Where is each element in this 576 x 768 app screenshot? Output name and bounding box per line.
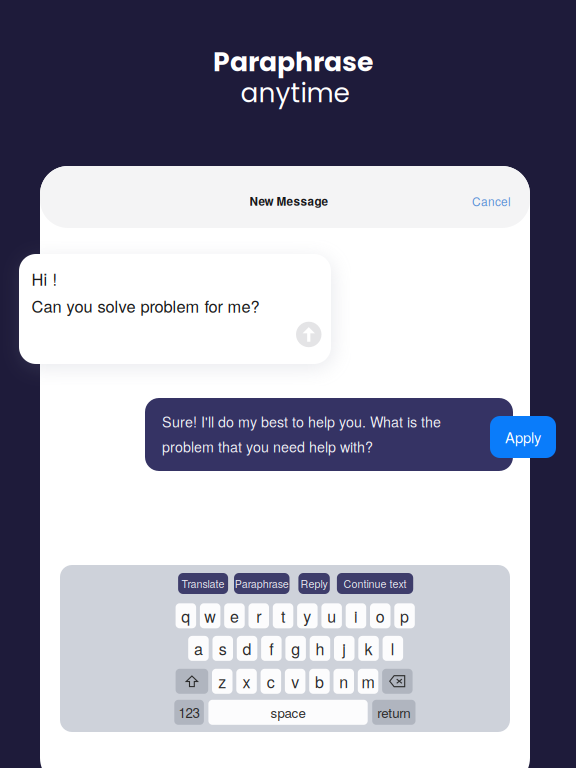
staticText: Reply [301, 576, 328, 591]
button[interactable]: return [372, 700, 415, 725]
staticText: return [377, 703, 410, 722]
staticText: y [303, 604, 311, 627]
button[interactable]: s [212, 636, 233, 661]
button[interactable]: d [237, 636, 257, 661]
staticText: m [362, 670, 375, 693]
staticText: Translate [182, 576, 225, 591]
staticText: u [327, 604, 336, 627]
staticText: Hi ! [31, 267, 57, 290]
button[interactable]: q [176, 603, 196, 628]
button[interactable]: p [394, 603, 415, 628]
staticText: Cancel [472, 192, 511, 209]
button[interactable]: Cancel [451, 192, 511, 210]
staticText: q [181, 604, 190, 627]
button[interactable]: e [224, 603, 245, 628]
staticText: anytime [240, 74, 349, 111]
button[interactable]: Paraphrase [234, 573, 289, 594]
button[interactable]: w [200, 603, 220, 628]
button[interactable]: j [334, 636, 354, 661]
button[interactable]: i [346, 603, 366, 628]
staticText: f [269, 637, 273, 660]
button[interactable]: r [248, 603, 269, 628]
button[interactable]: k [358, 636, 379, 661]
button[interactable]: Delete [382, 669, 413, 694]
staticText: s [219, 637, 227, 660]
staticText: j [342, 637, 346, 660]
staticText: space [271, 703, 306, 722]
button[interactable]: o [370, 603, 390, 628]
staticText: New Message [249, 193, 328, 209]
button[interactable]: t [273, 603, 293, 628]
button[interactable]: Shift [176, 669, 208, 694]
staticText: a [194, 637, 203, 660]
staticText: g [291, 637, 300, 660]
staticText: c [267, 670, 275, 693]
button[interactable]: Continue text [337, 573, 413, 594]
staticText: e [230, 604, 239, 627]
staticText: l [391, 637, 395, 660]
staticText: i [354, 604, 358, 627]
button[interactable]: m [358, 669, 378, 694]
button[interactable]: v [285, 669, 305, 694]
staticText: Paraphrase [213, 43, 373, 81]
staticText: b [315, 670, 324, 693]
button[interactable]: Translate [178, 573, 228, 594]
button[interactable]: New Message [229, 192, 349, 210]
staticText: x [243, 670, 251, 693]
staticText: v [291, 670, 299, 693]
staticText: Paraphrase [235, 576, 289, 591]
staticText: Continue text [343, 576, 406, 591]
staticText: Sure! I'll do my best to help you. What … [162, 411, 441, 431]
button[interactable]: space [208, 700, 368, 725]
button[interactable]: g [285, 636, 306, 661]
button[interactable]: c [261, 669, 281, 694]
button[interactable]: l [383, 636, 403, 661]
button[interactable]: Send [296, 322, 321, 347]
staticText: w [204, 604, 216, 627]
staticText: problem that you need help with? [162, 436, 373, 456]
button[interactable]: 123 [174, 700, 204, 725]
staticText: 123 [179, 703, 200, 722]
button[interactable]: a [188, 636, 209, 661]
button[interactable]: b [309, 669, 330, 694]
button[interactable]: h [310, 636, 330, 661]
button[interactable]: u [321, 603, 342, 628]
staticText: Can you solve problem for me? [31, 294, 259, 317]
staticText: z [218, 670, 226, 693]
staticText: o [376, 604, 385, 627]
button[interactable]: x [236, 669, 257, 694]
button[interactable]: y [297, 603, 318, 628]
button[interactable]: Reply [298, 573, 330, 594]
staticText: Apply [505, 426, 541, 447]
button[interactable]: Apply [490, 416, 556, 458]
staticText: n [339, 670, 348, 693]
staticText: r [256, 604, 261, 627]
staticText: k [365, 637, 373, 660]
button[interactable]: f [261, 636, 282, 661]
staticText: d [242, 637, 251, 660]
button[interactable]: n [333, 669, 354, 694]
button[interactable]: z [212, 669, 232, 694]
staticText: h [315, 637, 324, 660]
staticText: t [281, 604, 285, 627]
staticText: p [400, 604, 409, 627]
